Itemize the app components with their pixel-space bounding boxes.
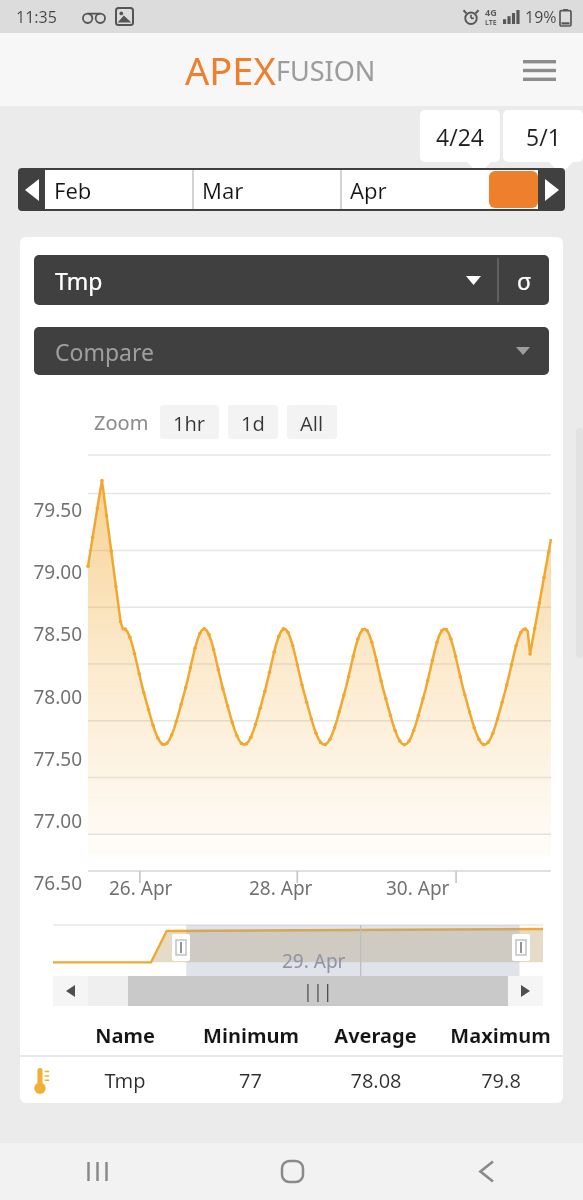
button[interactable]: Scroll thumb <box>128 976 508 1006</box>
staticText: Tmp <box>104 1067 146 1094</box>
staticText: 79.00 <box>28 559 82 585</box>
staticText: Compare <box>55 336 516 367</box>
staticText: σ <box>517 265 532 296</box>
button[interactable]: Tmp <box>20 1057 563 1103</box>
staticText: FUSION <box>276 52 376 89</box>
staticText: Mar <box>202 175 244 205</box>
staticText: 4G <box>485 6 497 18</box>
button[interactable]: All <box>287 405 337 439</box>
button[interactable]: Date range handle <box>489 171 538 208</box>
button[interactable]: Back <box>389 1143 583 1200</box>
staticText: Average <box>334 1022 417 1049</box>
staticText: 5/1 <box>526 121 561 152</box>
staticText: Feb <box>54 175 92 205</box>
staticText: 79.8 <box>481 1067 521 1094</box>
staticText: Minimum <box>203 1022 299 1049</box>
button[interactable]: Next month <box>538 168 565 211</box>
button[interactable]: Tmp <box>34 255 498 305</box>
button[interactable]: Scroll right <box>508 976 543 1006</box>
staticText: All <box>300 410 324 434</box>
staticText: 79.50 <box>28 497 82 523</box>
button[interactable]: Range handle <box>172 934 190 961</box>
staticText: 29. Apr <box>282 948 346 974</box>
staticText: 11:35 <box>16 6 57 28</box>
staticText: 19% <box>525 6 557 28</box>
button[interactable]: Recent apps <box>0 1143 195 1200</box>
staticText: 26. Apr <box>109 875 173 901</box>
button[interactable]: Menu <box>516 47 562 93</box>
staticText: LTE <box>485 18 497 28</box>
staticText: 78.50 <box>28 621 82 647</box>
staticText: 78.00 <box>28 684 82 710</box>
staticText: 30. Apr <box>386 875 450 901</box>
staticText: 77.50 <box>28 746 82 772</box>
staticText: 77.00 <box>28 808 82 834</box>
staticText: Name <box>95 1022 155 1049</box>
button[interactable]: Feb <box>45 170 193 209</box>
staticText: Zoom <box>94 409 149 436</box>
staticText: Maximum <box>450 1022 551 1049</box>
button[interactable]: Compare <box>34 327 549 375</box>
button[interactable]: 1d <box>228 405 278 439</box>
button[interactable]: Range handle <box>512 934 530 961</box>
staticText: Apr <box>350 175 387 205</box>
button[interactable]: Previous month <box>18 168 45 211</box>
staticText: Tmp <box>55 265 466 296</box>
button[interactable]: Scroll left <box>53 976 88 1006</box>
staticText: 76.50 <box>28 870 82 896</box>
button[interactable]: Home <box>195 1143 389 1200</box>
staticText: ||| <box>303 979 333 1004</box>
staticText: 28. Apr <box>249 875 313 901</box>
staticText: APEX <box>185 44 276 96</box>
staticText: 1hr <box>173 410 206 434</box>
button[interactable]: Standard deviation <box>499 255 549 305</box>
button[interactable]: Mar <box>193 170 341 209</box>
button[interactable]: 1hr <box>160 405 219 439</box>
staticText: 77 <box>239 1067 262 1094</box>
staticText: 4/24 <box>436 121 485 152</box>
staticText: 78.08 <box>350 1067 402 1094</box>
button[interactable]: Apr <box>341 170 489 209</box>
staticText: 1d <box>241 410 265 434</box>
